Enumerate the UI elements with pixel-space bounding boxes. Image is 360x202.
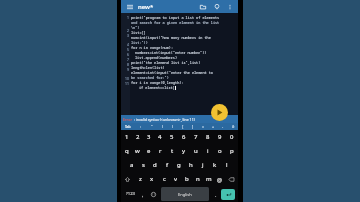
staticText: length=len(list): [131, 65, 165, 70]
button[interactable]: s: [137, 158, 149, 172]
button[interactable]: Enter: [221, 189, 235, 200]
button[interactable]: z: [134, 172, 146, 186]
staticText: 7: [194, 133, 198, 141]
button[interactable]: Hint: [211, 1, 222, 12]
staticText: +: [212, 124, 215, 129]
button[interactable]: 5: [166, 130, 178, 144]
staticText: .: [215, 191, 217, 198]
button[interactable]: b: [181, 172, 192, 186]
button[interactable]: ): [168, 123, 178, 130]
button[interactable]: 2: [132, 130, 143, 144]
staticText: b: [185, 175, 189, 183]
staticText: ): [172, 124, 174, 129]
staticText: ": [151, 124, 153, 129]
button[interactable]: h: [185, 158, 197, 172]
button[interactable]: g: [173, 158, 185, 172]
button[interactable]: x: [146, 172, 158, 186]
button[interactable]: e: [143, 144, 154, 158]
staticText: u: [194, 147, 198, 155]
staticText: g: [177, 161, 181, 169]
button[interactable]: @: [214, 172, 225, 186]
button[interactable]: Backspace: [225, 172, 238, 186]
button[interactable]: ?123: [124, 187, 138, 201]
staticText: 2: [136, 133, 140, 141]
button[interactable]: Shift: [121, 172, 134, 186]
staticText: p: [230, 147, 234, 155]
button[interactable]: :: [135, 123, 146, 130]
staticText: y: [182, 147, 186, 155]
staticText: j: [202, 161, 204, 169]
button[interactable]: 9: [214, 130, 226, 144]
staticText: =: [202, 124, 205, 129]
button[interactable]: 4: [154, 130, 166, 144]
button[interactable]: t: [166, 144, 178, 158]
button[interactable]: Emoji: [148, 187, 159, 201]
button[interactable]: =: [198, 123, 208, 130]
button[interactable]: ": [146, 123, 157, 130]
button[interactable]: k: [209, 158, 221, 172]
button[interactable]: More options: [224, 1, 235, 12]
button[interactable]: m: [203, 172, 214, 186]
button[interactable]: ,: [138, 187, 148, 201]
staticText: \n"): [131, 25, 140, 30]
staticText: 10: [125, 76, 129, 81]
button[interactable]: ]: [188, 123, 198, 130]
staticText: 6: [182, 133, 186, 141]
staticText: d: [153, 161, 157, 169]
staticText: k: [213, 161, 217, 169]
button[interactable]: u: [190, 144, 202, 158]
button[interactable]: v: [170, 172, 181, 186]
staticText: z: [139, 175, 142, 183]
button[interactable]: 8: [202, 130, 214, 144]
button[interactable]: Run: [211, 104, 228, 121]
button[interactable]: c: [158, 172, 170, 186]
button[interactable]: 3: [143, 130, 154, 144]
button[interactable]: Menu: [125, 2, 134, 11]
staticText: 4: [158, 133, 162, 141]
button[interactable]: o: [214, 144, 226, 158]
button[interactable]: n: [192, 172, 203, 186]
button[interactable]: r: [154, 144, 166, 158]
button[interactable]: w: [132, 144, 143, 158]
button[interactable]: i: [202, 144, 214, 158]
staticText: w: [135, 147, 140, 155]
button[interactable]: .: [211, 187, 221, 201]
button[interactable]: p: [226, 144, 238, 158]
staticText: ?123: [126, 191, 136, 197]
staticText: x: [150, 175, 154, 183]
button[interactable]: 7: [190, 130, 202, 144]
button[interactable]: a: [126, 158, 137, 172]
button[interactable]: 0: [226, 130, 238, 144]
button[interactable]: j: [197, 158, 209, 172]
button[interactable]: f: [161, 158, 173, 172]
button[interactable]: +: [208, 123, 218, 130]
button[interactable]: English: [161, 187, 209, 201]
staticText: i: [207, 147, 209, 155]
button[interactable]: -: [218, 123, 228, 130]
button[interactable]: (: [157, 123, 168, 130]
button[interactable]: [: [178, 123, 188, 130]
staticText: print("program to input a list of elemen…: [131, 15, 220, 20]
button[interactable]: 6: [178, 130, 190, 144]
button[interactable]: 1: [121, 130, 132, 144]
staticText: m: [206, 175, 212, 183]
button[interactable]: y: [178, 144, 190, 158]
button[interactable]: Tab: [121, 123, 135, 130]
staticText: and search for a given element in the li…: [131, 20, 220, 25]
staticText: 6: [127, 52, 129, 57]
staticText: 9: [127, 67, 129, 72]
button[interactable]: Open folder: [197, 1, 208, 12]
staticText: :: [140, 124, 141, 129]
staticText: -: [222, 124, 224, 129]
button[interactable]: q: [121, 144, 132, 158]
button[interactable]: #: [228, 123, 238, 130]
staticText: English: [178, 192, 192, 197]
button[interactable]: l: [221, 158, 233, 172]
button[interactable]: d: [149, 158, 161, 172]
staticText: 8: [127, 62, 129, 67]
staticText: 4: [127, 42, 129, 47]
staticText: for n in range(num):: [131, 45, 173, 50]
staticText: new*: [138, 3, 154, 11]
staticText: o: [218, 147, 222, 155]
staticText: t: [171, 147, 174, 155]
